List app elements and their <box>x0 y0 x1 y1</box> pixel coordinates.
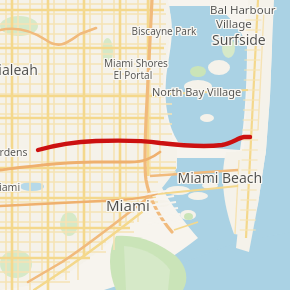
button[interactable]: Map of Miami with highlighted route <box>0 0 290 290</box>
